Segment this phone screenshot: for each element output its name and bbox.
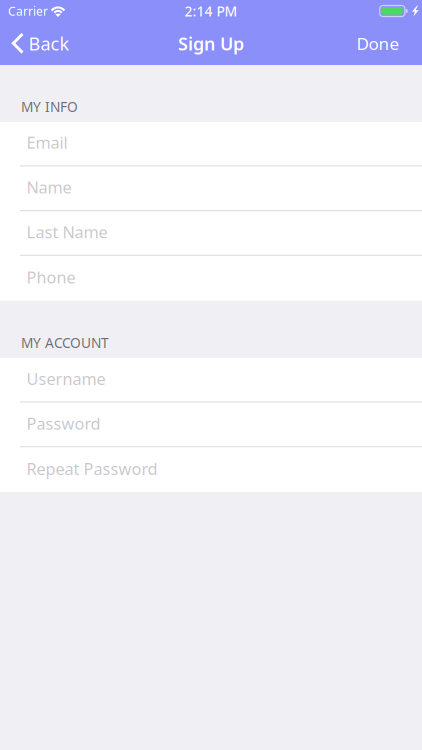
staticText: Phone — [26, 266, 75, 288]
staticText: Back — [28, 31, 69, 56]
staticText: Done — [356, 32, 399, 55]
staticText: Carrier — [8, 3, 48, 19]
staticText: Sign Up — [178, 32, 244, 55]
button[interactable]: Password — [0, 403, 422, 447]
button[interactable]: Phone — [0, 256, 422, 301]
staticText: 2:14 PM — [184, 2, 237, 20]
staticText: MY INFO — [21, 98, 78, 116]
staticText: Name — [26, 176, 71, 198]
staticText: MY ACCOUNT — [21, 334, 109, 352]
staticText: Username — [26, 368, 105, 389]
button[interactable]: Name — [0, 166, 422, 211]
button[interactable]: Email — [0, 122, 422, 166]
button[interactable]: Done — [342, 22, 419, 65]
staticText: Email — [26, 132, 67, 153]
button[interactable]: Back — [0, 22, 79, 65]
button[interactable]: Username — [0, 358, 422, 403]
staticText: Last Name — [26, 221, 107, 243]
button[interactable]: Last Name — [0, 211, 422, 256]
staticText: Password — [26, 412, 100, 434]
staticText: Repeat Password — [26, 458, 157, 479]
button[interactable]: Repeat Password — [0, 447, 422, 492]
